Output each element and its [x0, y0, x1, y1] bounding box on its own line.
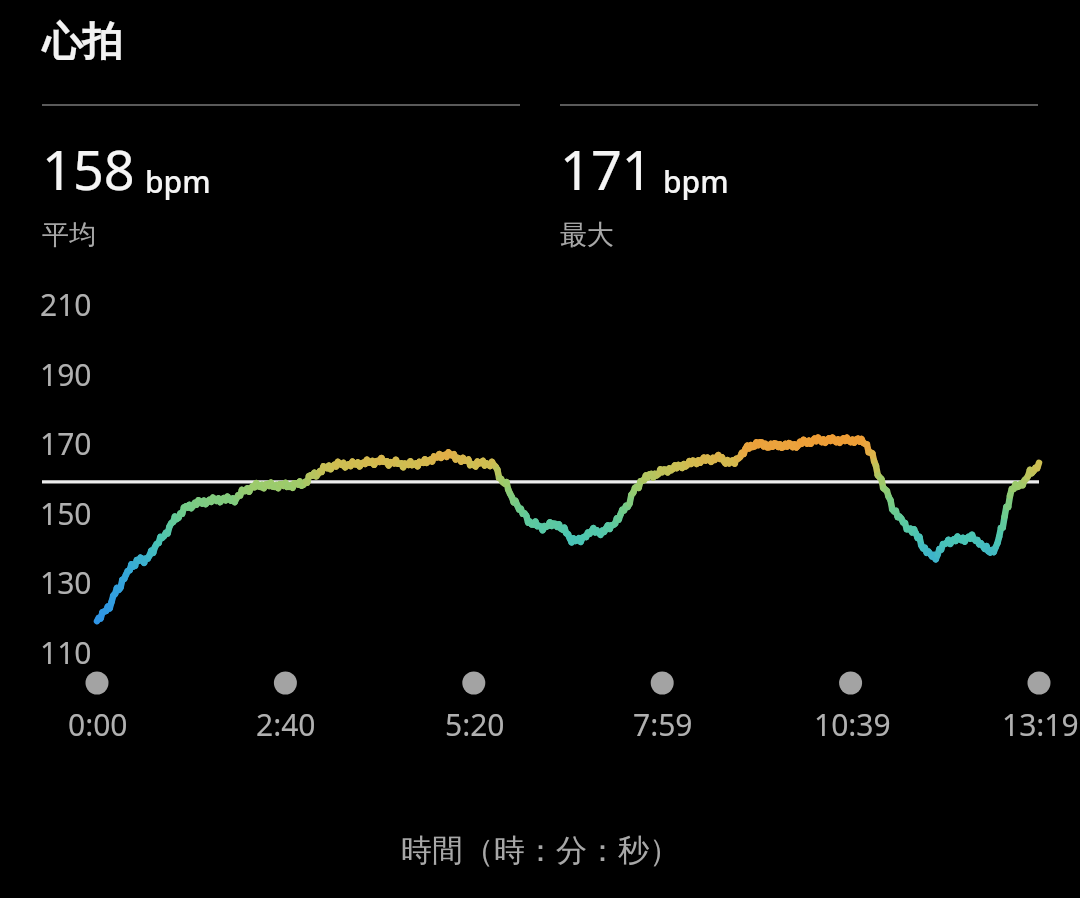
staticText: 190 — [40, 354, 92, 395]
staticText: 最大 — [560, 218, 614, 252]
staticText: 170 — [40, 423, 92, 464]
staticText: 10:39 — [814, 704, 891, 745]
button[interactable]: 158 — [42, 104, 520, 252]
staticText: 平均 — [42, 218, 96, 252]
staticText: 時間（時：分：秒） — [401, 831, 680, 870]
staticText: 171 — [560, 132, 653, 206]
staticText: 7:59 — [633, 704, 693, 745]
staticText: 13:19 — [1002, 704, 1079, 745]
staticText: 150 — [40, 493, 92, 534]
staticText: 心拍 — [42, 16, 122, 66]
staticText: 158 — [42, 132, 135, 206]
button[interactable]: Heart rate chart — [0, 252, 1080, 831]
staticText: 110 — [40, 632, 92, 673]
staticText: 130 — [40, 562, 92, 603]
staticText: 5:20 — [445, 704, 505, 745]
staticText: bpm — [145, 161, 211, 202]
staticText: 2:40 — [256, 704, 316, 745]
staticText: 0:00 — [68, 704, 128, 745]
button[interactable]: 171 — [560, 104, 1038, 252]
staticText: 210 — [40, 284, 92, 325]
staticText: bpm — [663, 161, 729, 202]
